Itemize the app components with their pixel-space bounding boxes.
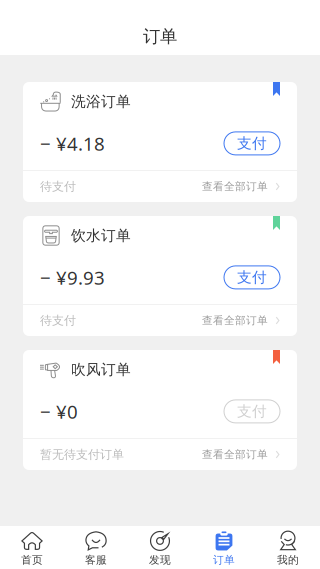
staticText: 首页 <box>21 553 43 566</box>
staticText: 洗浴订单 <box>71 92 131 110</box>
button[interactable]: 查看全部订单 <box>202 448 280 461</box>
button[interactable]: 支付 <box>224 132 280 155</box>
staticText: − ¥0 <box>40 399 78 424</box>
staticText: 订单 <box>143 26 177 47</box>
button[interactable]: 首页 <box>0 523 64 569</box>
button[interactable]: 查看全部订单 <box>202 180 280 193</box>
button[interactable]: 我的 <box>256 523 320 569</box>
staticText: 待支付 <box>40 313 76 328</box>
staticText: 我的 <box>277 553 299 566</box>
staticText: 待支付 <box>40 179 76 194</box>
staticText: 查看全部订单 <box>202 180 268 193</box>
staticText: 饮水订单 <box>71 226 131 244</box>
button[interactable]: 客服 <box>64 523 128 569</box>
staticText: − ¥9.93 <box>40 265 105 290</box>
staticText: 订单 <box>213 553 235 566</box>
staticText: 支付 <box>237 134 267 152</box>
staticText: 发现 <box>149 553 171 566</box>
staticText: 支付 <box>237 402 267 420</box>
button[interactable]: 支付 <box>224 266 280 289</box>
button[interactable]: 查看全部订单 <box>202 314 280 327</box>
button[interactable]: 订单 <box>192 523 256 569</box>
staticText: 吹风订单 <box>71 360 131 378</box>
staticText: − ¥4.18 <box>40 131 105 156</box>
button[interactable]: 支付 <box>224 400 280 423</box>
staticText: 支付 <box>237 268 267 286</box>
staticText: 查看全部订单 <box>202 314 268 327</box>
staticText: 暂无待支付订单 <box>40 447 124 462</box>
button[interactable]: 发现 <box>128 523 192 569</box>
staticText: 客服 <box>85 553 107 566</box>
staticText: 查看全部订单 <box>202 448 268 461</box>
